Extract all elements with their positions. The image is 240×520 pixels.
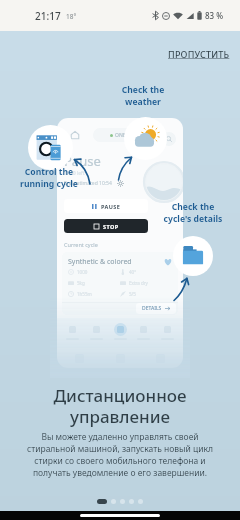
staticText: 1h55m (77, 291, 92, 297)
staticText: Check the cycle's details (152, 201, 234, 225)
staticText: 18° (66, 12, 77, 21)
button[interactable]: Check the cycle's details (173, 236, 213, 276)
button[interactable]: Search (162, 132, 176, 146)
staticText: Current cycle (64, 241, 98, 248)
staticText: 83 % (205, 10, 224, 21)
button[interactable]: Tab 1 (86, 323, 107, 340)
button[interactable]: ONE TOUCH (93, 128, 161, 142)
button[interactable]: Tab 0 (62, 323, 83, 340)
staticText: 5/5 (129, 291, 136, 297)
staticText: ПРОПУСТИТЬ (168, 48, 230, 60)
staticText: Check the weather (110, 84, 176, 108)
staticText: STOP (103, 223, 119, 230)
staticText: 40° (129, 269, 137, 275)
staticText: DETAILS (142, 305, 162, 312)
staticText: 21:17 (35, 9, 61, 23)
staticText: End estimated 10:54 (64, 180, 112, 187)
staticText: Synthetic & colored (68, 257, 132, 267)
button[interactable]: Check the weather (124, 117, 167, 160)
button[interactable]: Home (67, 127, 83, 143)
button[interactable]: STOP (64, 219, 148, 233)
button[interactable]: Tab 2 (110, 323, 131, 340)
button[interactable]: Synthetic & colored (62, 252, 178, 315)
button[interactable]: PAUSE (64, 199, 148, 213)
staticText: Вы можете удаленно управлять своей стира… (20, 431, 220, 479)
button[interactable]: Control the running cycle (28, 125, 73, 170)
staticText: 5kg (77, 280, 85, 286)
staticText: Extra dry (129, 280, 148, 286)
button[interactable]: ПРОПУСТИТЬ (162, 44, 236, 64)
staticText: 1000 (77, 269, 88, 275)
staticText: Control the running cycle (8, 166, 90, 190)
staticText: PAUSE (101, 203, 121, 210)
staticText: Pause (64, 152, 101, 170)
staticText: Дистанционное управление (0, 384, 240, 428)
staticText: 1h40 left (64, 170, 85, 177)
button[interactable]: Tab 3 (133, 323, 154, 340)
button[interactable]: DETAILS (136, 303, 176, 314)
button[interactable]: Tab 4 (157, 323, 178, 340)
staticText: ONE TOUCH (115, 132, 145, 139)
